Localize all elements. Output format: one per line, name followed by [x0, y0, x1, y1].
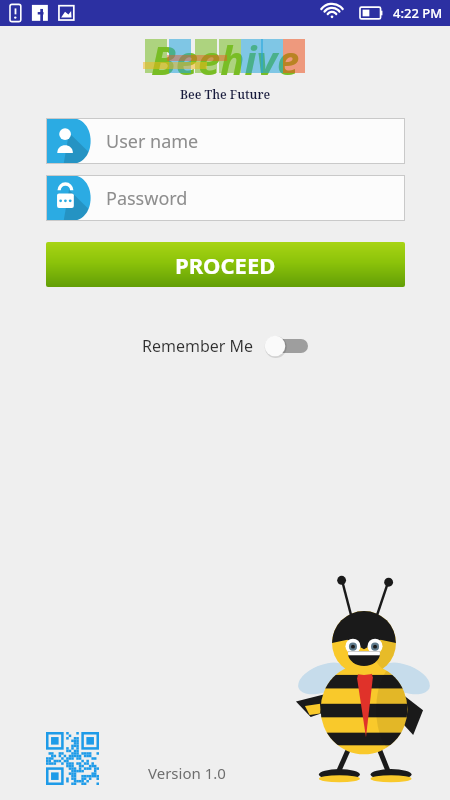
staticText: User name [106, 129, 199, 154]
staticText: Version 1.0 [148, 763, 226, 783]
button[interactable]: QR code [46, 732, 99, 785]
button[interactable]: PROCEED [46, 242, 405, 287]
staticText: Remember Me [142, 335, 254, 357]
staticText: Beehive [151, 32, 300, 86]
button[interactable]: User name field [46, 118, 405, 164]
staticText: 4:22 PM [393, 4, 443, 22]
button[interactable]: Password field [46, 175, 405, 221]
staticText: Password [106, 186, 188, 211]
staticText: PROCEED [175, 250, 276, 280]
button[interactable]: Remember Me [138, 330, 312, 362]
staticText: Bee The Future [180, 86, 271, 102]
